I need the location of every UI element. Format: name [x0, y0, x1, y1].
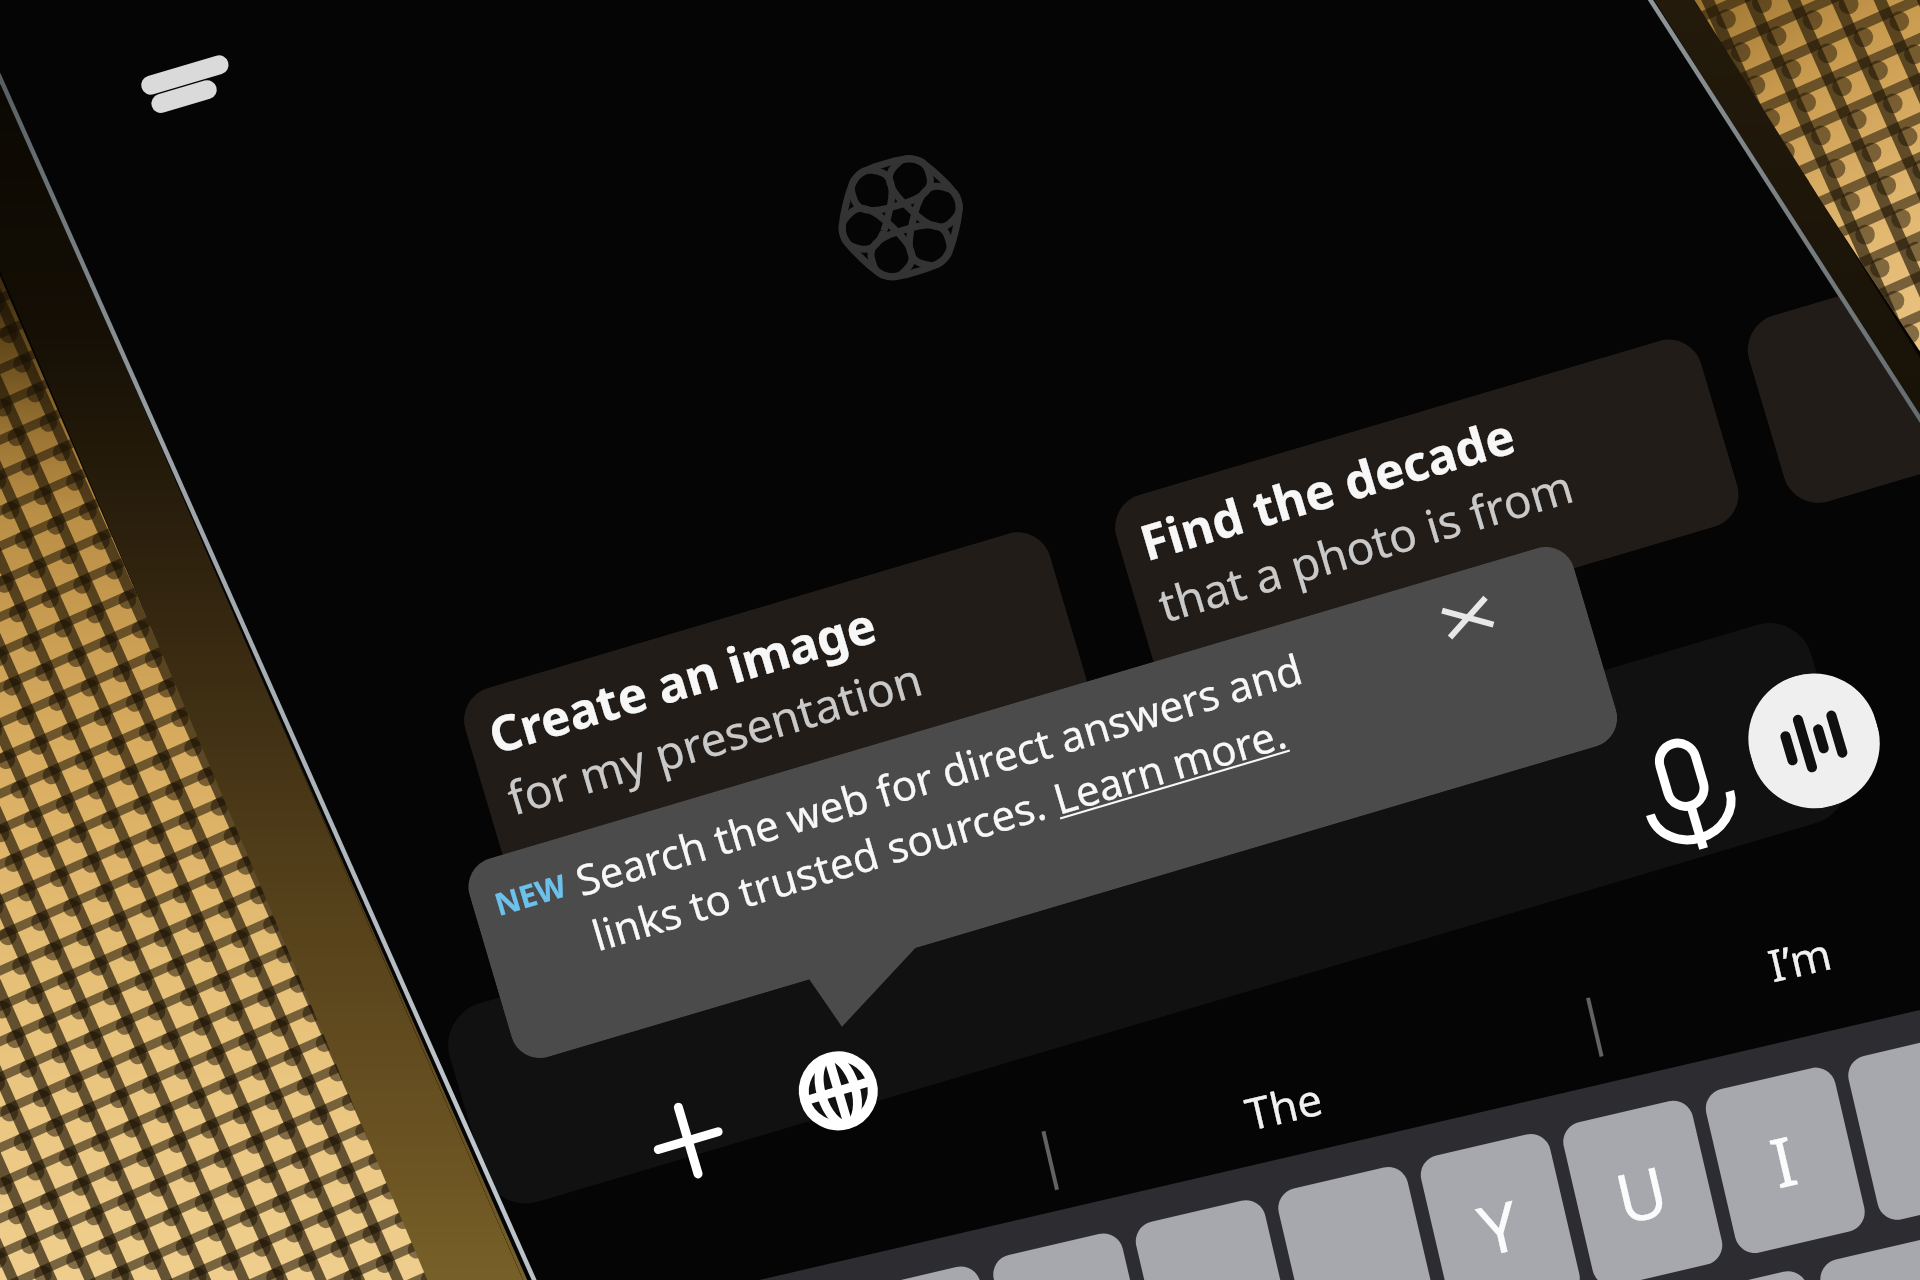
staticText: NEW — [489, 864, 571, 925]
staticText: Y — [1469, 1177, 1528, 1276]
button[interactable]: Dictate — [1614, 717, 1764, 884]
button[interactable]: I — [1700, 1064, 1867, 1257]
staticText: I’m — [1762, 922, 1837, 995]
staticText: links to trusted sources. — [585, 772, 1062, 963]
staticText: Create an image — [481, 591, 884, 769]
button[interactable]: I’m — [1762, 880, 1920, 1018]
button[interactable]: The — [1239, 1029, 1501, 1166]
staticText: that a photo is from — [1151, 454, 1580, 636]
button[interactable]: Voice mode — [1733, 658, 1896, 824]
button[interactable]: Menu — [126, 34, 255, 128]
button[interactable]: More suggestions — [1739, 162, 1920, 512]
staticText: Search the web for direct answers and — [569, 639, 1309, 908]
button[interactable]: Add attachment — [610, 1068, 766, 1213]
staticText: for my presentation — [500, 647, 929, 829]
button[interactable]: U — [1558, 1097, 1725, 1280]
button[interactable]: Dismiss — [1397, 566, 1538, 669]
staticText: I — [1761, 1112, 1806, 1208]
staticText: Learn more. — [1046, 704, 1292, 826]
button[interactable]: Menu — [0, 0, 1920, 1280]
button[interactable]: Search the web — [760, 1019, 917, 1163]
button[interactable]: NEW — [461, 540, 1624, 1065]
button[interactable]: Message ChatGPT — [437, 612, 1858, 1214]
staticText: The — [1239, 1068, 1328, 1144]
button[interactable]: Find the decade — [1107, 331, 1747, 691]
staticText: U — [1607, 1142, 1676, 1244]
button[interactable]: Create an image — [456, 524, 1096, 883]
button[interactable]: Y — [1415, 1130, 1581, 1280]
staticText: Find the decade — [1132, 401, 1523, 576]
